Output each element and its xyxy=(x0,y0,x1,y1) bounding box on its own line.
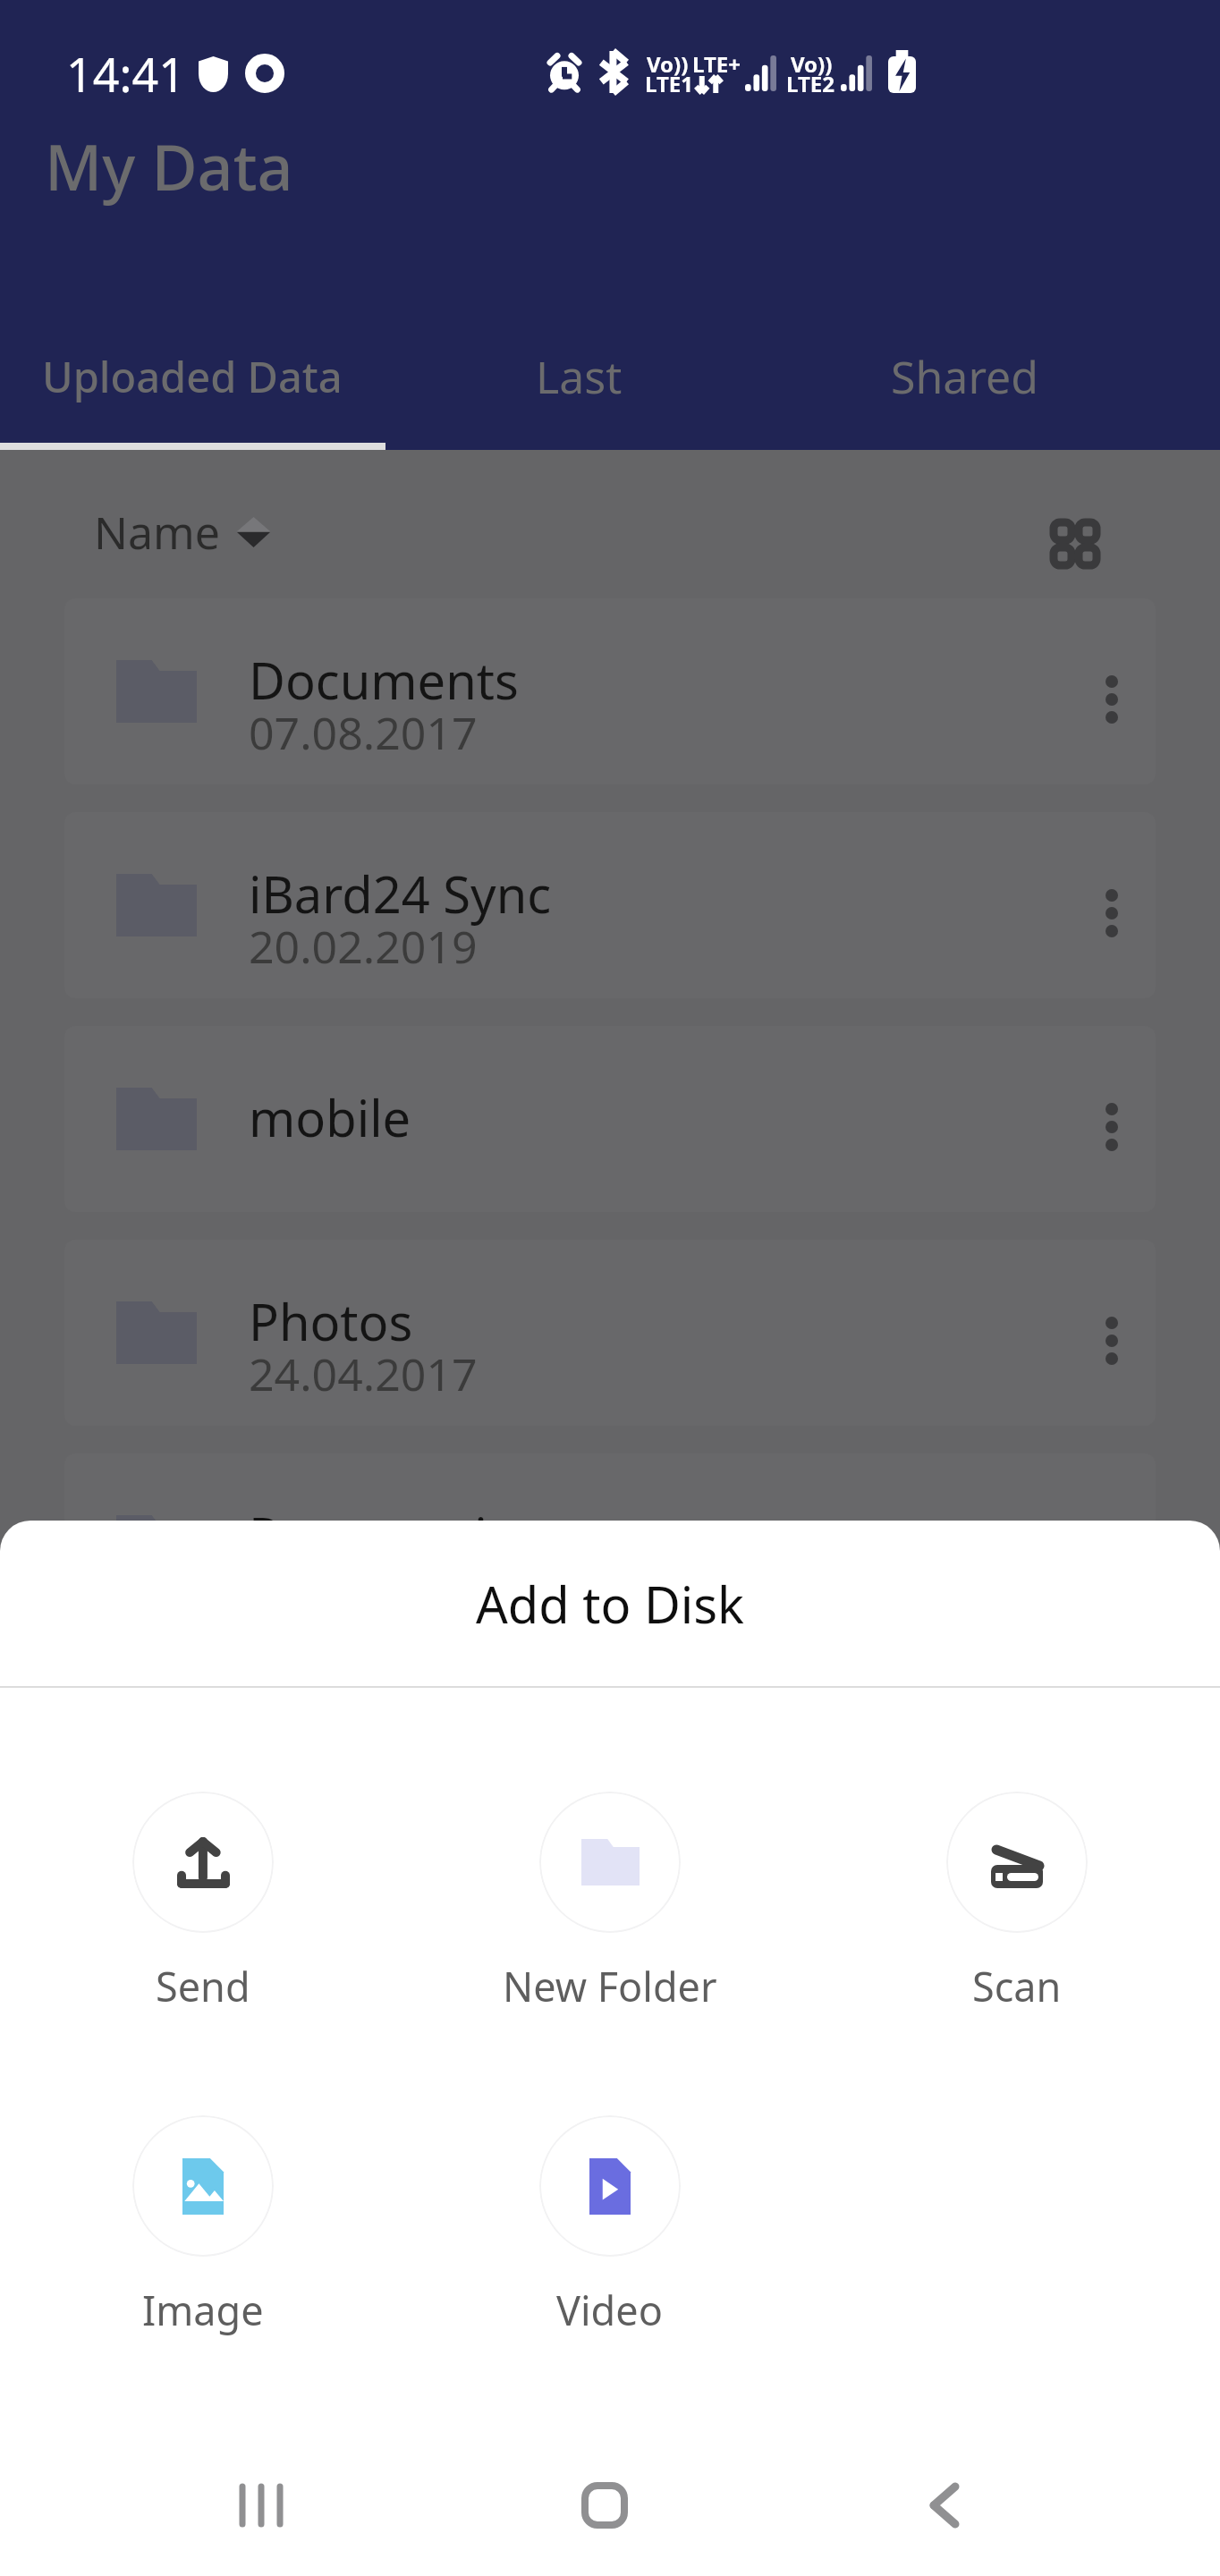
staticText: Last xyxy=(536,346,623,407)
button[interactable]: Video xyxy=(406,2115,813,2337)
button[interactable]: Image xyxy=(0,2115,406,2337)
button[interactable]: Uploaded Data xyxy=(0,318,385,436)
button[interactable]: Home xyxy=(533,2434,676,2576)
button[interactable]: More options xyxy=(1072,1506,1152,1587)
button[interactable]: New Folder xyxy=(406,1792,813,2013)
button[interactable]: iBard24 Sync xyxy=(64,812,1156,998)
staticText: Documents xyxy=(249,646,519,714)
button[interactable]: More options xyxy=(1072,651,1152,732)
button[interactable]: Recents xyxy=(191,2434,334,2576)
staticText: 20.02.2019 xyxy=(249,916,478,977)
button[interactable]: Shared xyxy=(772,318,1156,436)
staticText: Name xyxy=(94,502,220,563)
staticText: mobile xyxy=(249,1083,411,1151)
staticText: LTE1 xyxy=(645,69,693,98)
staticText: LTE+ xyxy=(692,49,741,79)
button[interactable]: More options xyxy=(1072,1079,1152,1159)
button[interactable]: Last xyxy=(386,318,771,436)
button[interactable]: Send xyxy=(0,1792,406,2013)
button[interactable]: Photos xyxy=(64,1240,1156,1426)
staticText: Video xyxy=(556,2283,663,2337)
staticText: Photos xyxy=(249,1287,413,1355)
staticText: Vo)) xyxy=(791,49,833,79)
staticText: Uploaded Data xyxy=(42,348,343,405)
staticText: iBard24 Sync xyxy=(249,860,552,928)
staticText: LTE2 xyxy=(786,69,835,98)
button[interactable]: More options xyxy=(1072,1292,1152,1373)
button[interactable]: Scan xyxy=(813,1792,1220,2013)
staticText: 07.08.2017 xyxy=(249,702,478,763)
staticText: My Data xyxy=(45,123,293,208)
staticText: Scan xyxy=(972,1959,1062,2013)
staticText: Send xyxy=(156,1959,250,2013)
staticText: 24.04.2017 xyxy=(249,1343,478,1404)
staticText: Shared xyxy=(891,346,1038,407)
staticText: Image xyxy=(142,2283,264,2337)
staticText: Vo)) xyxy=(647,49,689,79)
staticText: 14:41 xyxy=(66,42,185,106)
button[interactable]: More options xyxy=(1072,865,1152,945)
button[interactable]: Name xyxy=(67,482,297,582)
button[interactable]: Back xyxy=(873,2434,1016,2576)
staticText: New Folder xyxy=(503,1959,717,2013)
staticText: Add to Disk xyxy=(476,1570,744,1638)
button[interactable]: Grid view xyxy=(1021,489,1128,597)
button[interactable]: Documents xyxy=(64,598,1156,784)
staticText: Presentation xyxy=(249,1501,549,1569)
button[interactable]: mobile xyxy=(64,1026,1156,1212)
button[interactable]: Presentation xyxy=(64,1453,1156,1640)
